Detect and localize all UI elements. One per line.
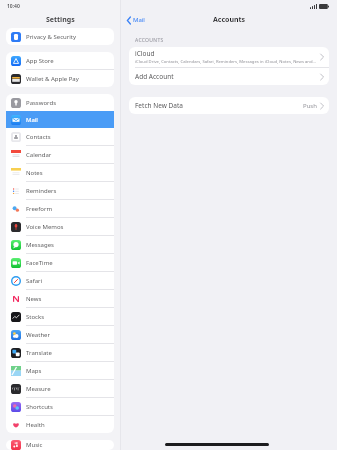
staticText: Wallet & Apple Pay	[26, 75, 79, 83]
button[interactable]: FaceTime	[6, 254, 114, 271]
button[interactable]: Mail	[121, 14, 149, 26]
staticText: ACCOUNTS	[135, 37, 164, 44]
staticText: Messages	[26, 241, 54, 249]
staticText: Notes	[26, 169, 43, 177]
staticText: 10:40	[7, 3, 20, 10]
staticText: Weather	[26, 331, 50, 339]
staticText: Accounts	[213, 15, 246, 25]
button[interactable]: Weather	[6, 326, 114, 343]
button[interactable]: Privacy & Security	[6, 28, 114, 45]
staticText: App Store	[26, 57, 54, 65]
staticText: Stocks	[26, 313, 45, 321]
button[interactable]: Health	[6, 416, 114, 433]
button[interactable]: Add Account	[129, 68, 329, 85]
staticText: Safari	[26, 277, 43, 285]
staticText: Reminders	[26, 187, 57, 195]
staticText: iCloud Drive, Contacts, Calendars, Safar…	[135, 59, 316, 65]
button[interactable]: Messages	[6, 236, 114, 253]
staticText: Shortcuts	[26, 403, 53, 411]
button[interactable]: iCloud	[129, 47, 329, 67]
button[interactable]: Translate	[6, 344, 114, 361]
button[interactable]: Wallet & Apple Pay	[6, 70, 114, 87]
staticText: Add Account	[135, 72, 320, 81]
button[interactable]: Maps	[6, 362, 114, 379]
staticText: Fetch New Data	[135, 101, 303, 110]
button[interactable]: Notes	[6, 164, 114, 181]
staticText: Health	[26, 421, 45, 429]
button[interactable]: App Store	[6, 52, 114, 69]
staticText: iCloud	[135, 49, 155, 58]
button[interactable]: Fetch New Data	[129, 97, 329, 114]
button[interactable]: Freeform	[6, 200, 114, 217]
staticText: Maps	[26, 367, 42, 375]
staticText: Settings	[46, 15, 75, 25]
staticText: Passwords	[26, 99, 57, 107]
staticText: News	[26, 295, 42, 303]
button[interactable]: Mail	[6, 111, 114, 128]
staticText: Privacy & Security	[26, 33, 77, 41]
staticText: FaceTime	[26, 259, 53, 267]
staticText: Measure	[26, 385, 51, 393]
button[interactable]: Calendar	[6, 146, 114, 163]
staticText: Mail	[26, 116, 38, 124]
staticText: Calendar	[26, 151, 52, 159]
button[interactable]: Safari	[6, 272, 114, 289]
button[interactable]: News	[6, 290, 114, 307]
button[interactable]: Voice Memos	[6, 218, 114, 235]
button[interactable]: Music	[6, 440, 114, 450]
staticText: Push	[303, 102, 317, 110]
staticText: Freeform	[26, 205, 53, 213]
button[interactable]: Shortcuts	[6, 398, 114, 415]
button[interactable]: Contacts	[6, 128, 114, 145]
button[interactable]: Measure	[6, 380, 114, 397]
staticText: Mail	[133, 16, 145, 24]
button[interactable]: Reminders	[6, 182, 114, 199]
staticText: Music	[26, 441, 43, 449]
staticText: Translate	[26, 349, 52, 357]
button[interactable]: Stocks	[6, 308, 114, 325]
staticText: Voice Memos	[26, 223, 64, 231]
button[interactable]: Passwords	[6, 94, 114, 111]
staticText: Contacts	[26, 133, 51, 141]
